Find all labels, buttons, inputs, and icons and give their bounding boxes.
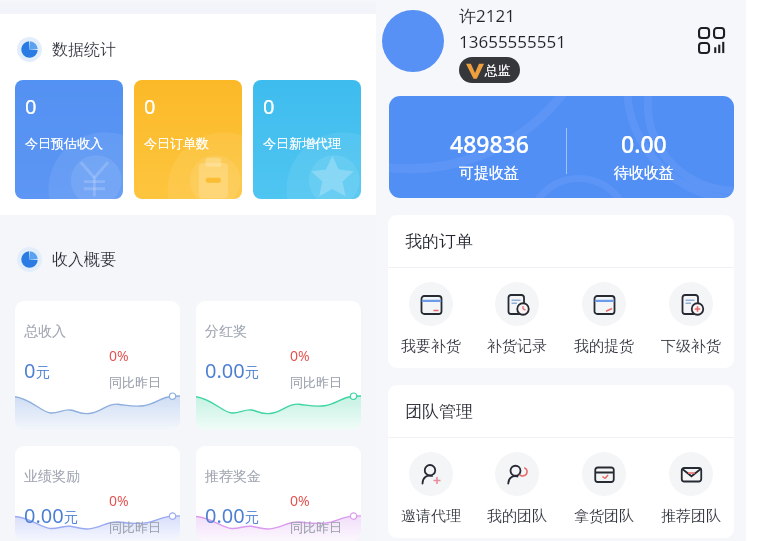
staticText: 0% xyxy=(290,346,310,365)
button[interactable]: 0 xyxy=(253,80,361,199)
staticText: 我的提货 xyxy=(574,337,634,356)
button[interactable]: 我的团队 xyxy=(474,452,560,526)
staticText: 元 xyxy=(36,364,50,382)
staticText: 总收入 xyxy=(24,323,66,341)
staticText: 待收收益 xyxy=(614,164,674,183)
staticText: 今日新增代理 xyxy=(263,135,341,151)
button[interactable]: 0 xyxy=(134,80,242,199)
staticText: 0.00 xyxy=(621,128,667,159)
button[interactable]: 总监 xyxy=(466,57,511,83)
staticText: 总监 xyxy=(485,62,511,78)
staticText: 许2121 xyxy=(459,4,515,27)
button[interactable]: 业绩奖励 xyxy=(15,446,180,541)
staticText: 元 xyxy=(245,364,259,382)
button[interactable]: Scan QR code xyxy=(698,27,723,52)
staticText: 今日预估收入 xyxy=(25,135,103,151)
staticText: 0.00 xyxy=(205,357,245,384)
button[interactable]: 总收入 xyxy=(15,301,180,430)
button[interactable]: 邀请代理 xyxy=(388,452,474,526)
staticText: 0% xyxy=(109,491,129,510)
button[interactable]: 推荐奖金 xyxy=(196,446,361,541)
staticText: 下级补货 xyxy=(661,337,721,356)
staticText: 0% xyxy=(109,346,129,365)
staticText: 可提收益 xyxy=(459,164,519,183)
button[interactable]: 489836 xyxy=(389,96,734,198)
staticText: 推荐奖金 xyxy=(205,468,261,486)
staticText: 0.00 xyxy=(205,502,245,529)
staticText: 元 xyxy=(64,509,78,527)
staticText: 0 xyxy=(24,357,36,384)
button[interactable]: 拿货团队 xyxy=(560,452,647,526)
button[interactable]: 我要补货 xyxy=(388,282,474,356)
button[interactable]: 补货记录 xyxy=(474,282,560,356)
staticText: 业绩奖励 xyxy=(24,468,80,486)
button[interactable]: 数据统计 xyxy=(17,37,116,62)
staticText: 0 xyxy=(25,93,37,120)
staticText: 推荐团队 xyxy=(661,507,721,526)
staticText: 元 xyxy=(245,509,259,527)
staticText: 我的订单 xyxy=(405,231,473,252)
staticText: 我要补货 xyxy=(401,337,461,356)
button[interactable]: 推荐团队 xyxy=(647,452,734,526)
button[interactable]: 0 xyxy=(15,80,123,199)
staticText: 489836 xyxy=(450,128,529,159)
button[interactable]: Avatar xyxy=(382,10,444,72)
staticText: 0% xyxy=(290,491,310,510)
staticText: 同比昨日 xyxy=(109,519,161,535)
staticText: 收入概要 xyxy=(52,250,116,270)
staticText: 同比昨日 xyxy=(290,374,342,390)
staticText: 分红奖 xyxy=(205,323,247,341)
staticText: 今日订单数 xyxy=(144,135,209,151)
button[interactable]: 收入概要 xyxy=(17,247,116,272)
button[interactable]: 分红奖 xyxy=(196,301,361,430)
staticText: 0 xyxy=(144,93,156,120)
button[interactable]: 我的提货 xyxy=(560,282,647,356)
staticText: 我的团队 xyxy=(487,507,547,526)
staticText: 数据统计 xyxy=(52,40,116,60)
staticText: 13655555551 xyxy=(459,30,566,53)
staticText: 补货记录 xyxy=(487,337,547,356)
staticText: 同比昨日 xyxy=(109,374,161,390)
staticText: 0.00 xyxy=(24,502,64,529)
button[interactable]: 下级补货 xyxy=(647,282,734,356)
staticText: 0 xyxy=(263,93,275,120)
staticText: 拿货团队 xyxy=(574,507,634,526)
staticText: 同比昨日 xyxy=(290,519,342,535)
staticText: 邀请代理 xyxy=(401,507,461,526)
staticText: 团队管理 xyxy=(405,401,473,422)
